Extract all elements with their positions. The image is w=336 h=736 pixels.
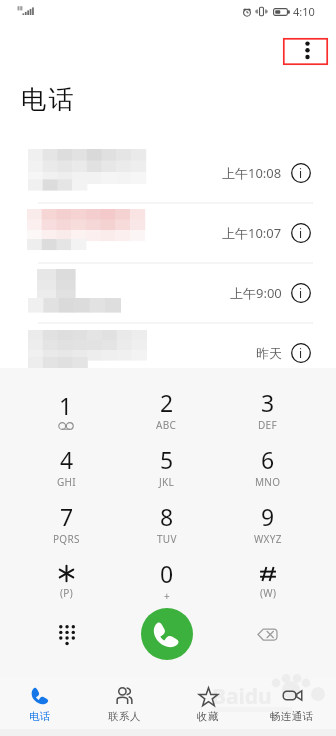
button[interactable]: 8 [116,495,217,552]
staticText: 5 [160,444,174,475]
staticText: PQRS [53,532,80,546]
staticText: 电话 [29,710,51,723]
staticText: WXYZ [254,532,282,546]
staticText: 昨天 [256,345,282,361]
staticText: 联系人 [108,710,141,723]
staticText: MNO [255,475,281,489]
button[interactable]: 7 [16,495,116,552]
button[interactable]: Call [141,608,193,660]
staticText: i [299,165,303,181]
staticText: 4 [60,444,74,475]
button[interactable]: 1 [16,381,116,438]
button[interactable]: 0 [116,552,217,609]
button[interactable]: 昨天 [0,323,336,383]
button[interactable]: More options [283,38,328,65]
button[interactable]: 9 [217,495,318,552]
button[interactable]: 联系人 [82,678,166,736]
staticText: Baidu [212,682,272,711]
button[interactable]: Call details [291,163,311,183]
staticText: i [299,225,303,241]
staticText: + [164,589,171,603]
staticText: 0 [160,558,174,589]
button[interactable]: Call details [291,283,311,303]
staticText: 收藏 [197,710,219,723]
button[interactable]: (W) [217,552,318,609]
button[interactable]: 电话 [0,678,82,736]
staticText: 畅连通话 [270,710,314,723]
staticText: GHI [57,475,76,489]
staticText: 1 [59,390,73,421]
staticText: i [299,345,303,361]
button[interactable]: Call details [291,343,311,363]
staticText: i [299,285,303,301]
staticText: 2 [160,387,174,418]
staticText: 8 [160,501,174,532]
staticText: ABC [156,418,177,432]
button[interactable]: 上午10:08 [0,143,336,203]
staticText: 7 [60,501,74,532]
button[interactable]: 5 [116,438,217,495]
button[interactable]: Dial pad [16,603,116,665]
button[interactable]: (P) [16,552,116,609]
button[interactable]: 6 [217,438,318,495]
staticText: 电话 [21,84,77,115]
staticText: 9 [261,501,275,532]
staticText: TUV [157,532,177,546]
staticText: DEF [258,418,277,432]
staticText: JKL [159,475,175,489]
staticText: 上午9:00 [230,284,282,302]
button[interactable]: Backspace [217,603,318,665]
staticText: (P) [60,586,73,600]
button[interactable]: 2 [116,381,217,438]
button[interactable]: 收藏 [166,678,250,736]
button[interactable]: Call details [291,223,311,243]
staticText: (W) [260,586,277,600]
button[interactable]: 畅连通话 [250,678,334,736]
button[interactable]: 3 [217,381,318,438]
button[interactable]: 上午10:07 [0,203,336,263]
staticText: 上午10:07 [222,224,282,242]
staticText: 4:10 [293,4,315,19]
button[interactable]: 上午9:00 [0,263,336,323]
button[interactable]: 4 [16,438,116,495]
staticText: 6 [261,444,275,475]
staticText: 上午10:08 [222,164,282,182]
staticText: 3 [261,387,275,418]
